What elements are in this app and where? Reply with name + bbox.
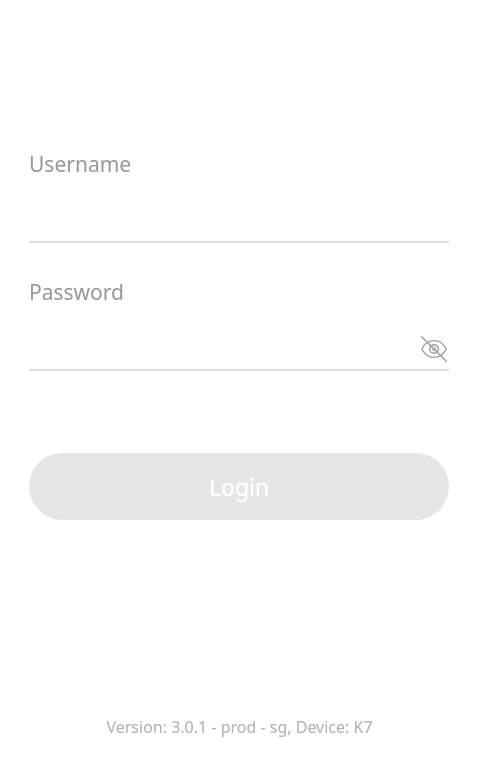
button[interactable]: Login bbox=[29, 453, 449, 520]
staticText: Username bbox=[29, 150, 132, 179]
button[interactable]: Show password bbox=[418, 333, 450, 365]
staticText: Version: 3.0.1 - prod - sg, Device: K7 bbox=[106, 716, 373, 738]
staticText: Login bbox=[209, 471, 270, 502]
staticText: Password bbox=[29, 278, 124, 307]
